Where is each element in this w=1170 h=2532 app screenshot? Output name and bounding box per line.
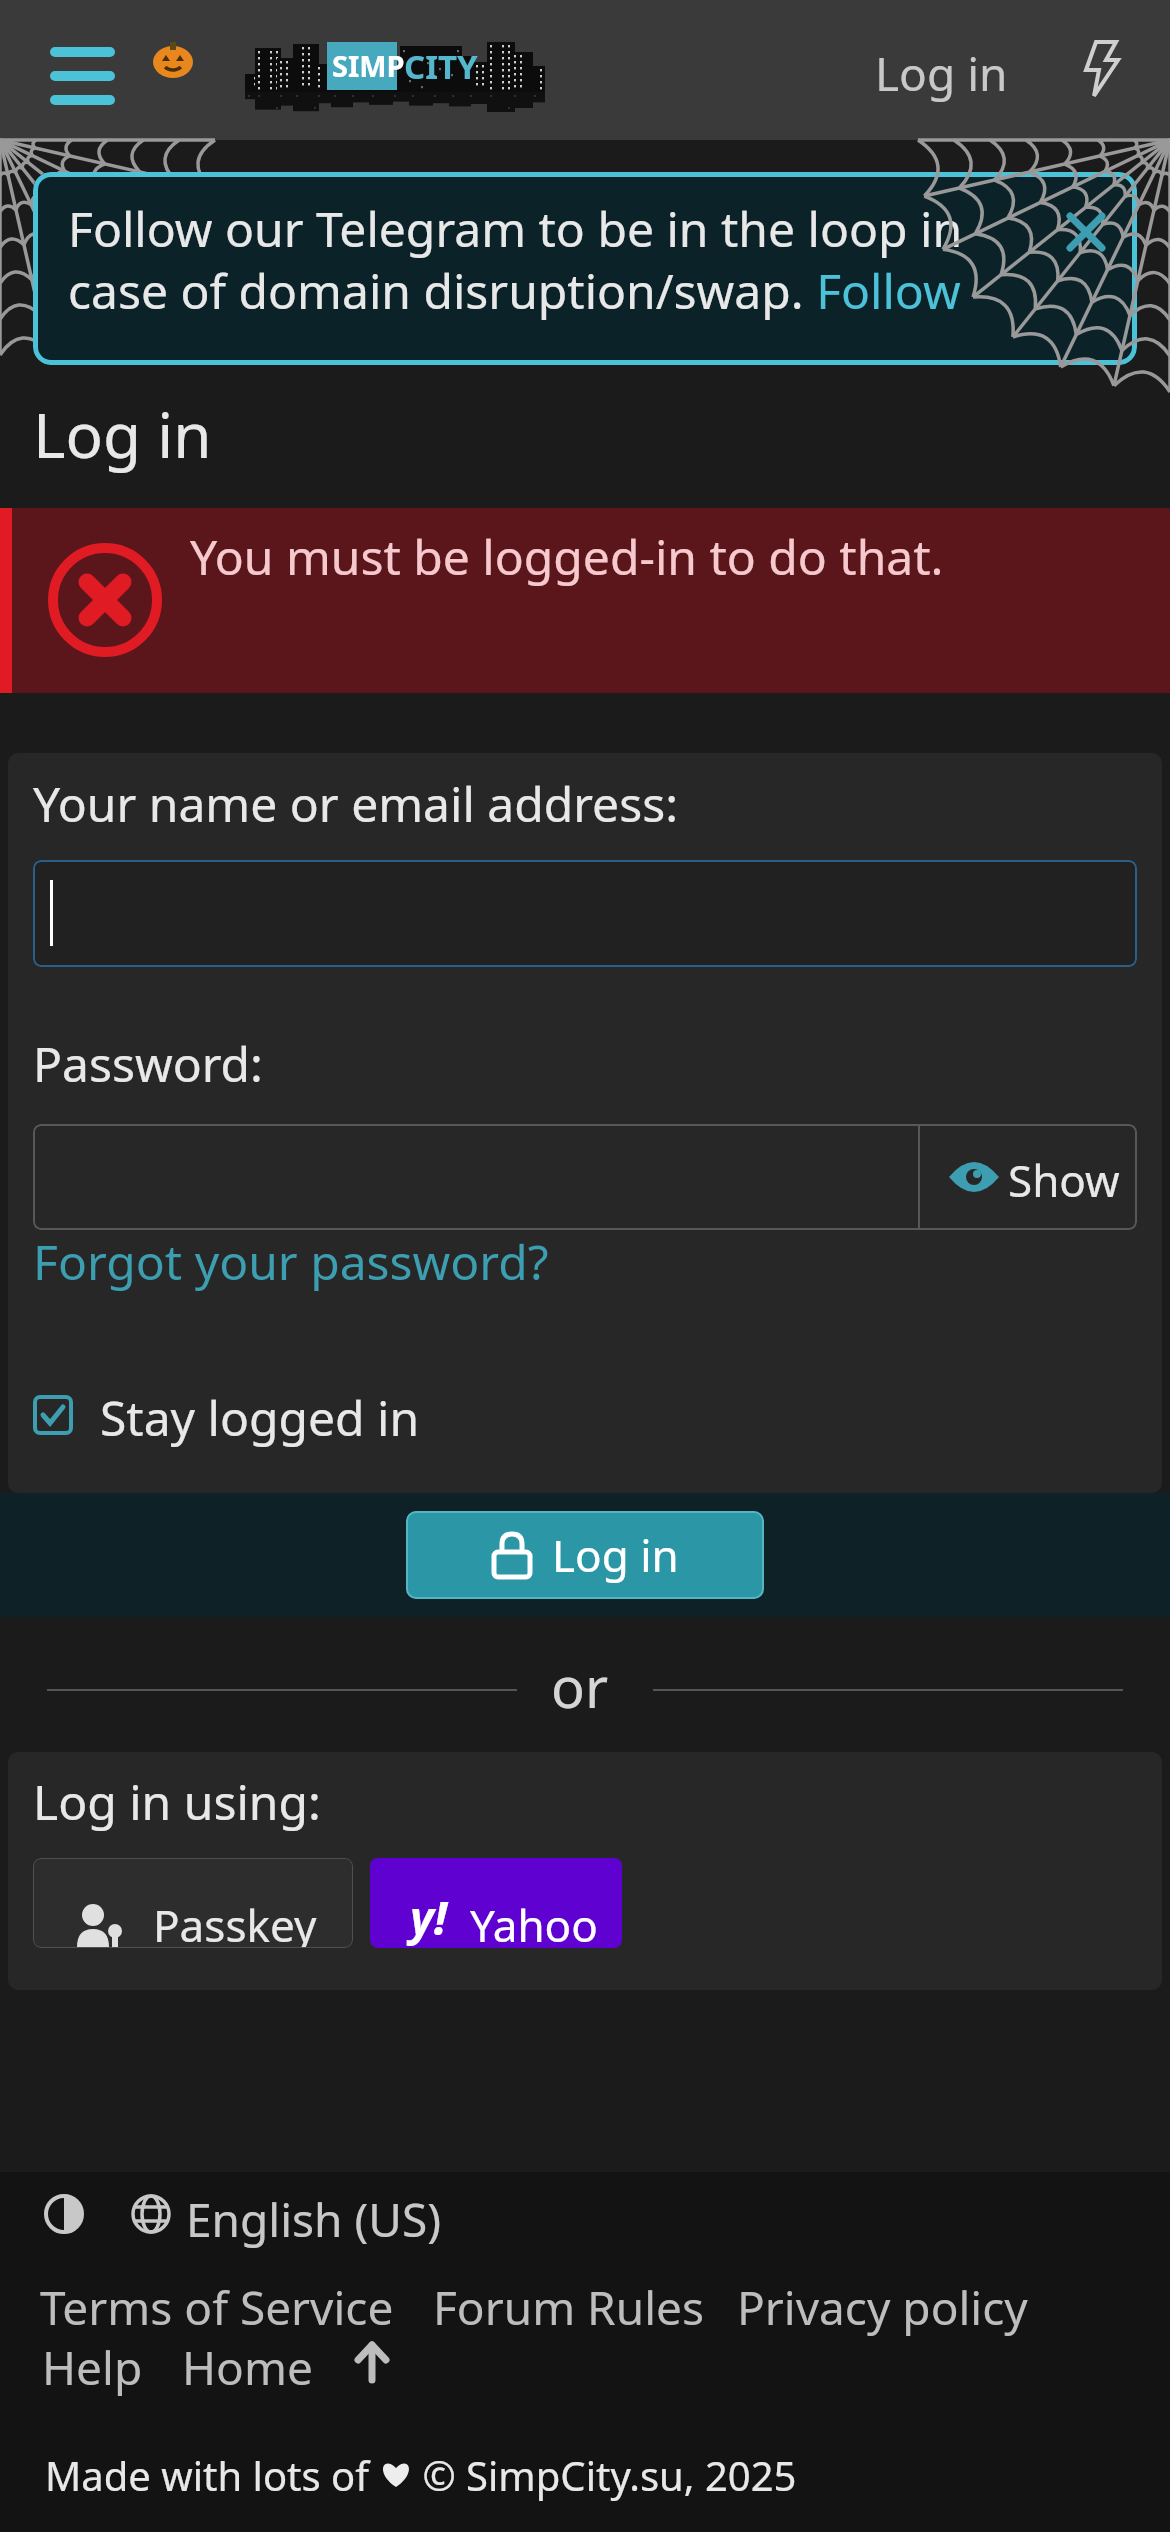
staticText: y! [410, 1886, 448, 1948]
button[interactable]: Log in [875, 42, 1008, 105]
button[interactable]: Help [42, 2336, 143, 2399]
staticText: Follow our Telegram to be in the loop in [68, 196, 963, 261]
staticText: Yahoo [470, 1895, 598, 1948]
staticText: SIMP [332, 46, 405, 85]
staticText: Made with lots of [45, 2448, 380, 2502]
button[interactable]: Follow our Telegram to be in the loop in [33, 172, 1137, 365]
button[interactable] [1068, 214, 1104, 250]
staticText: © SimpCity.su, 2025 [412, 2448, 797, 2502]
button[interactable]: Log in [406, 1511, 764, 1599]
button[interactable]: Terms of Service [40, 2276, 394, 2339]
button[interactable]: Stay logged in [33, 1381, 433, 1445]
staticText: Log in [552, 1525, 679, 1585]
button[interactable] [1082, 42, 1120, 98]
staticText: Log in using: [33, 1769, 321, 1834]
staticText: Log in [33, 392, 212, 476]
button[interactable]: Passkey [33, 1858, 353, 1948]
staticText: Stay logged in [100, 1385, 420, 1449]
button[interactable]: Show [33, 1124, 1137, 1230]
staticText: Passkey [153, 1895, 317, 1948]
staticText: Show [1008, 1150, 1120, 1210]
button[interactable] [33, 860, 1137, 967]
button[interactable]: Forum Rules [433, 2276, 704, 2339]
button[interactable]: y! [370, 1858, 622, 1948]
button[interactable]: Privacy policy [737, 2276, 1028, 2339]
staticText: Your name or email address: [33, 771, 679, 836]
staticText: or [551, 1648, 609, 1724]
button[interactable]: Forgot your password? [33, 1229, 549, 1294]
button[interactable]: English (US) [186, 2188, 441, 2251]
staticText: You must be logged-in to do that. [190, 524, 944, 589]
staticText: Password: [33, 1031, 263, 1096]
button[interactable] [44, 2194, 84, 2234]
button[interactable]: Home [182, 2336, 313, 2399]
button[interactable] [50, 40, 120, 110]
staticText: case of domain disruption/swap. Follow [68, 258, 961, 323]
button[interactable] [350, 2340, 394, 2384]
staticText: CITY [404, 44, 478, 89]
